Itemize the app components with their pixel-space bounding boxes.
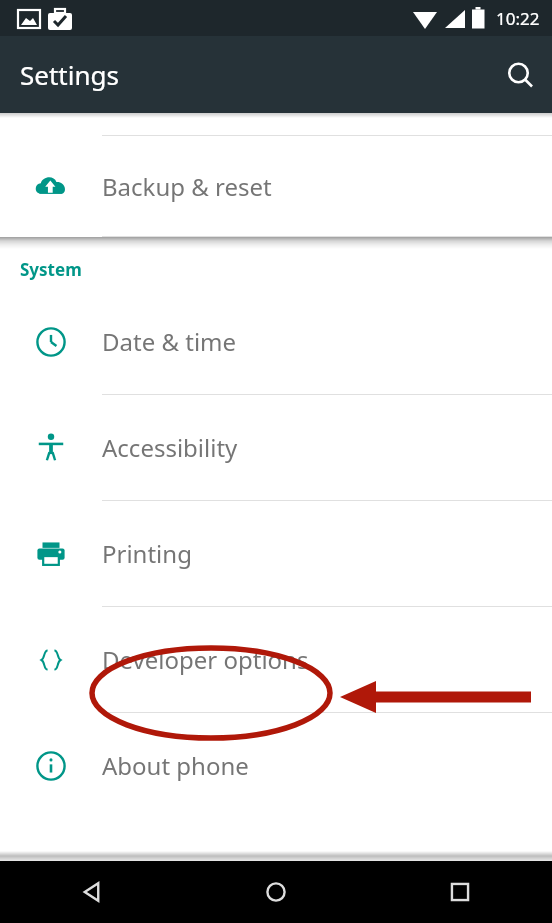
button[interactable]: Developer options: [0, 607, 552, 712]
button[interactable]: Accessibility: [0, 395, 552, 500]
staticText: 10:22: [496, 7, 540, 30]
button[interactable]: Recent apps: [368, 861, 552, 923]
staticText: Accessibility: [102, 431, 238, 464]
button[interactable]: About phone: [0, 713, 552, 818]
staticText: System: [20, 258, 82, 281]
staticText: Settings: [20, 57, 119, 92]
staticText: Printing: [102, 537, 192, 570]
staticText: Developer options: [102, 643, 309, 676]
button[interactable]: Printing: [0, 501, 552, 606]
staticText: Backup & reset: [102, 170, 272, 203]
button[interactable]: Search: [496, 51, 544, 99]
staticText: About phone: [102, 749, 249, 782]
staticText: Date & time: [102, 325, 237, 358]
button[interactable]: Date & time: [0, 289, 552, 394]
button[interactable]: Home: [184, 861, 368, 923]
button[interactable]: Back: [0, 861, 184, 923]
button[interactable]: Backup & reset: [0, 136, 552, 236]
